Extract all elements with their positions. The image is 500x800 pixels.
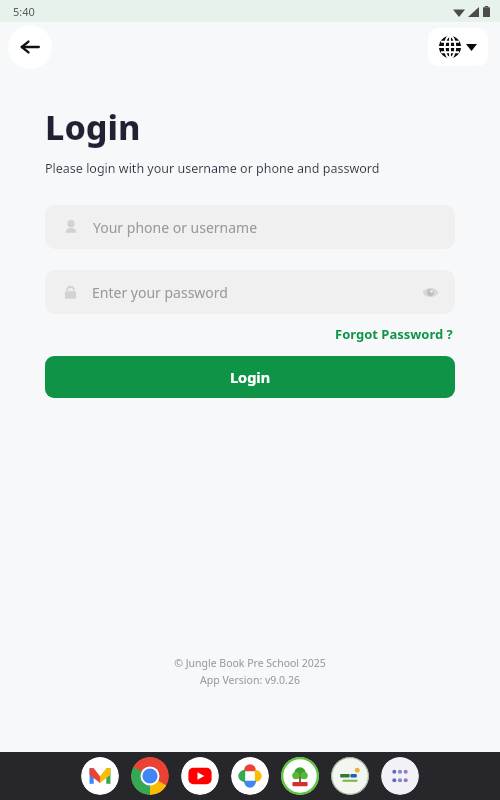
button[interactable]: Select language	[428, 28, 488, 66]
button[interactable]: Jungle Book app	[331, 757, 369, 795]
button[interactable]: YouTube	[181, 757, 219, 795]
staticText: Enter your password	[92, 283, 228, 302]
staticText: Login	[45, 104, 141, 150]
button[interactable]: Forgot Password ?	[333, 322, 455, 346]
staticText: App Version: v9.0.26	[200, 673, 300, 687]
button[interactable]: Enter your password	[45, 270, 455, 314]
button[interactable]: Your phone or username	[45, 205, 455, 249]
staticText: Your phone or username	[93, 218, 258, 237]
button[interactable]: Gmail	[81, 757, 119, 795]
staticText: Please login with your username or phone…	[45, 160, 380, 177]
staticText: Forgot Password ?	[335, 325, 453, 343]
button[interactable]: All apps	[381, 757, 419, 795]
staticText: Login	[230, 367, 271, 387]
button[interactable]: Back	[8, 25, 52, 69]
button[interactable]: Google Photos	[231, 757, 269, 795]
button[interactable]: Login	[45, 356, 455, 398]
button[interactable]: Show password	[415, 277, 445, 307]
staticText: 5:40	[13, 4, 35, 19]
staticText: © Jungle Book Pre School 2025	[174, 656, 326, 670]
button[interactable]: Chrome	[131, 757, 169, 795]
button[interactable]: School app	[281, 757, 319, 795]
